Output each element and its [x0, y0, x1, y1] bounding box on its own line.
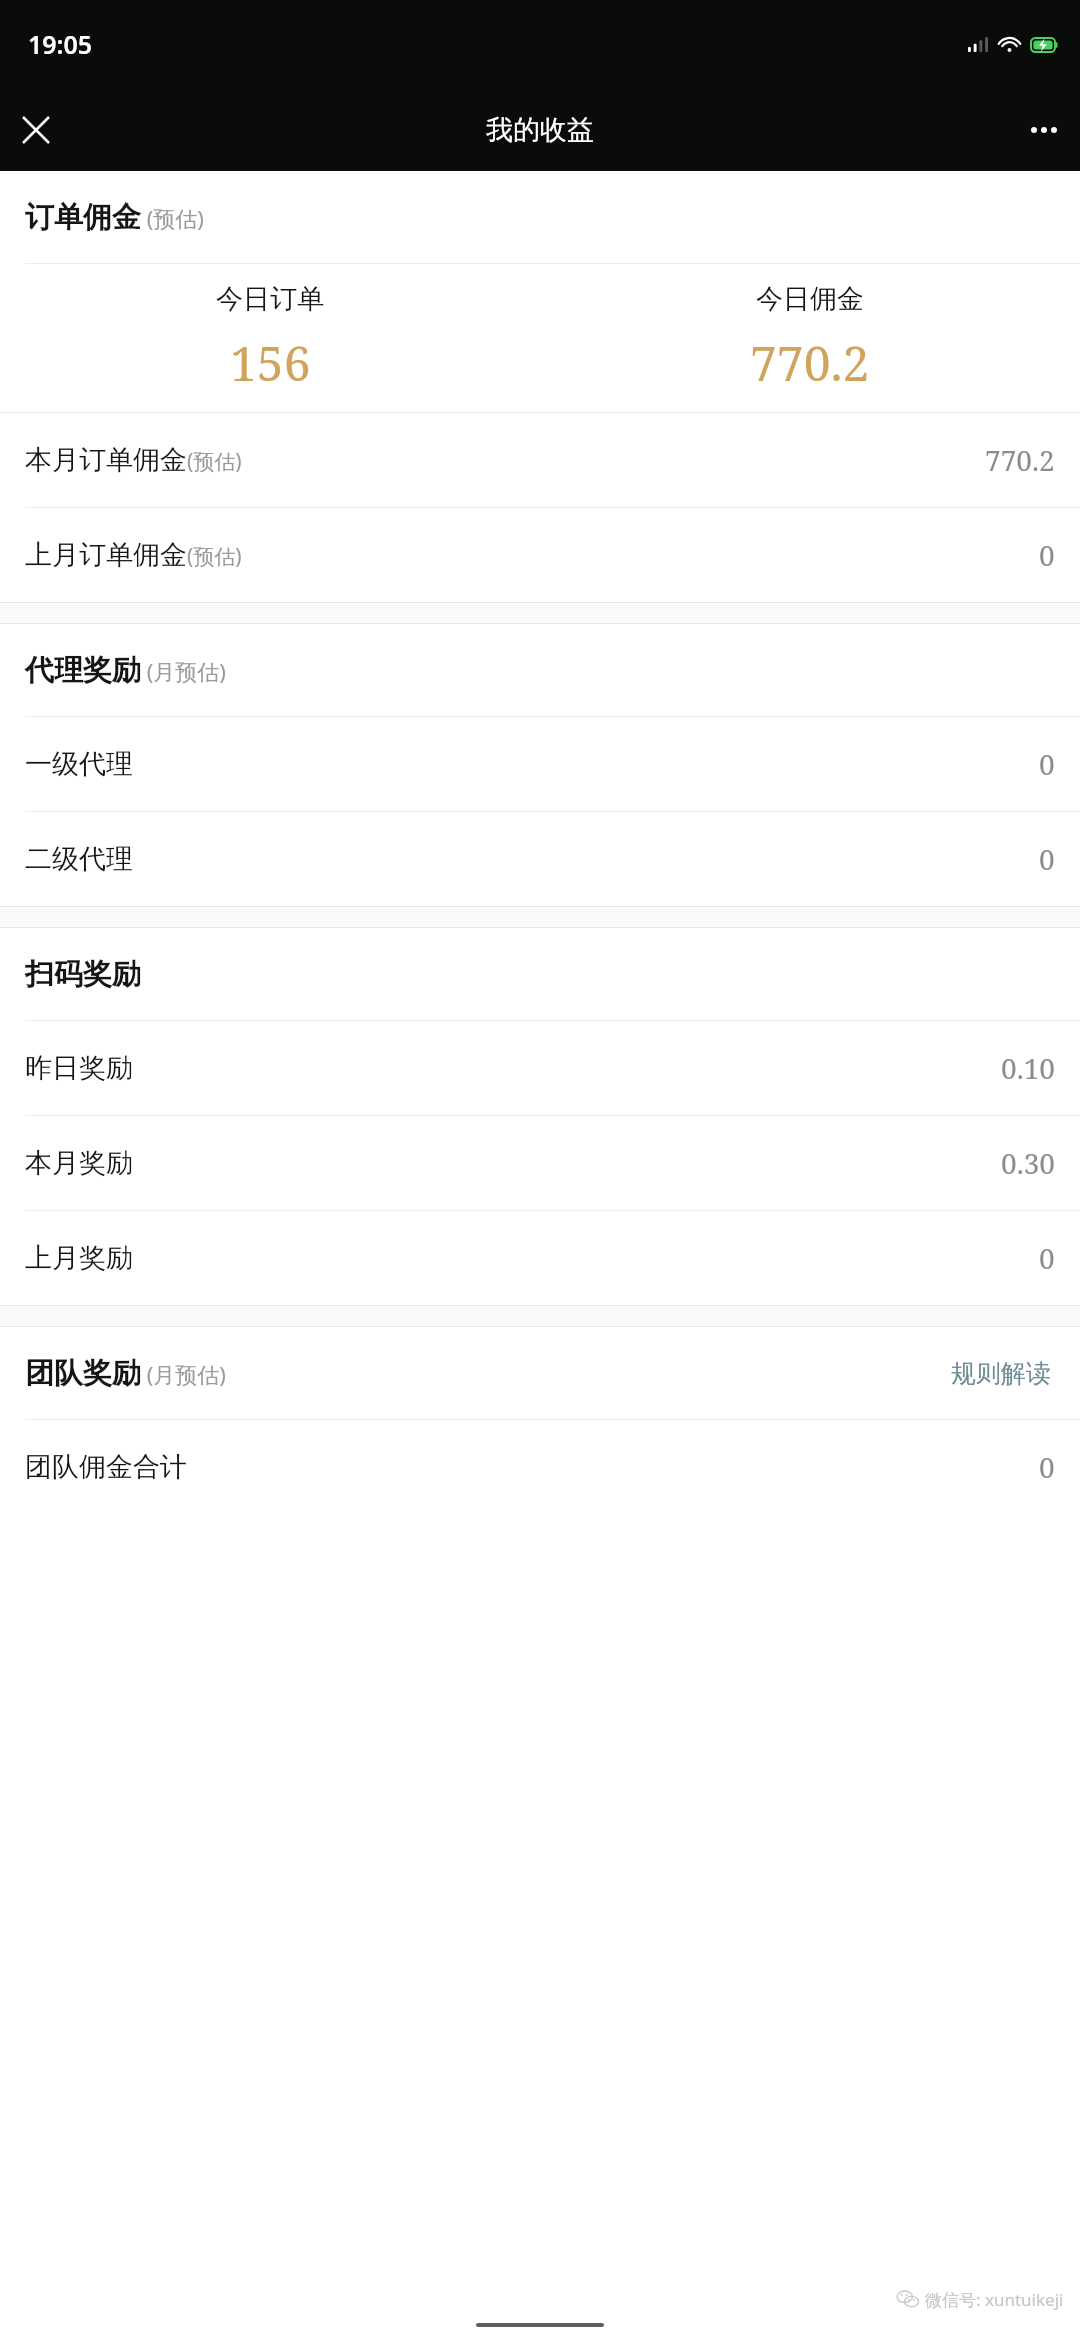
staticText: 0	[1039, 1448, 1055, 1486]
staticText: 0	[1039, 536, 1055, 574]
staticText: 今日订单	[216, 282, 324, 316]
staticText: 扫码奖励	[25, 956, 141, 993]
button[interactable]: Close	[0, 94, 72, 166]
staticText: 团队奖励 (月预估)	[25, 1355, 226, 1392]
staticText: 0.30	[1001, 1144, 1055, 1182]
staticText: 昨日奖励	[25, 1051, 133, 1085]
staticText: 二级代理	[25, 842, 133, 876]
button[interactable]: 团队佣金合计	[0, 1420, 1080, 1514]
staticText: 团队佣金合计	[25, 1450, 187, 1484]
staticText: 上月订单佣金(预估)	[25, 538, 242, 572]
staticText: 一级代理	[25, 747, 133, 781]
staticText: 0.10	[1001, 1049, 1055, 1087]
button[interactable]: 规则解读	[947, 1352, 1055, 1395]
staticText: 规则解读	[951, 1358, 1051, 1389]
staticText: 今日佣金	[756, 282, 864, 316]
staticText: 上月奖励	[25, 1241, 133, 1275]
staticText: 本月奖励	[25, 1146, 133, 1180]
staticText: 19:05	[28, 27, 93, 61]
button[interactable]: More options	[1008, 94, 1080, 166]
button[interactable]: 一级代理	[0, 717, 1080, 811]
staticText: 0	[1039, 745, 1055, 783]
staticText: 代理奖励 (月预估)	[25, 652, 226, 689]
staticText: 本月订单佣金(预估)	[25, 443, 242, 477]
staticText: 156	[230, 330, 311, 395]
staticText: 0	[1039, 840, 1055, 878]
staticText: 770.2	[985, 441, 1055, 479]
staticText: 770.2	[750, 330, 870, 395]
staticText: 0	[1039, 1239, 1055, 1277]
button[interactable]: 本月订单佣金(预估)	[0, 413, 1080, 507]
button[interactable]: 上月奖励	[0, 1211, 1080, 1305]
staticText: 微信号: xuntuikeji	[925, 2288, 1064, 2311]
button[interactable]: 昨日奖励	[0, 1021, 1080, 1115]
staticText: 我的收益	[486, 113, 594, 147]
button[interactable]: 本月奖励	[0, 1116, 1080, 1210]
button[interactable]: 二级代理	[0, 812, 1080, 906]
button[interactable]: 上月订单佣金(预估)	[0, 508, 1080, 602]
staticText: 订单佣金 (预估)	[25, 199, 204, 236]
